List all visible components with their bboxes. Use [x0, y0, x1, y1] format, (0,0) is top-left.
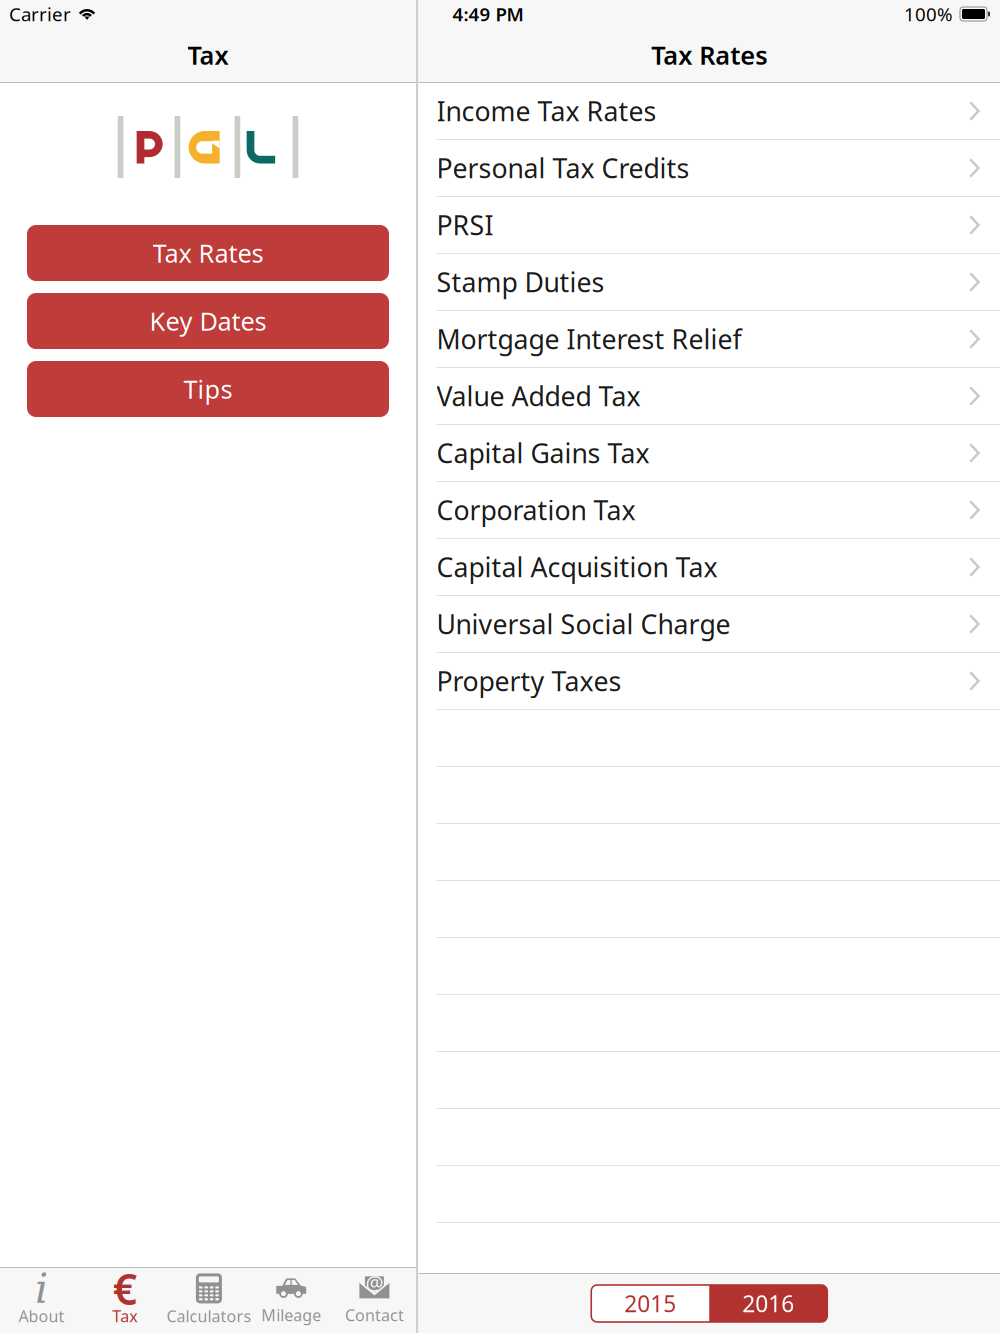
staticText: PRSI [436, 207, 493, 243]
button[interactable]: Value Added Tax [418, 368, 1000, 425]
staticText: 4:49 PM [452, 2, 523, 26]
staticText: Key Dates [149, 304, 266, 338]
staticText: About [19, 1305, 65, 1327]
staticText: 2016 [742, 1288, 794, 1318]
button[interactable]: Key Dates [27, 293, 389, 349]
staticText: Value Added Tax [436, 378, 640, 414]
staticText: Tax Rates [152, 236, 263, 270]
staticText: Tips [183, 372, 232, 406]
staticText: Carrier [9, 2, 71, 26]
staticText: Tax [187, 38, 228, 72]
button[interactable]: Universal Social Charge [418, 596, 1000, 653]
button[interactable]: Property Taxes [418, 653, 1000, 710]
button[interactable]: Income Tax Rates [418, 83, 1000, 140]
staticText: Calculators [166, 1305, 251, 1327]
staticText: Tax [112, 1305, 137, 1327]
button[interactable]: Mortgage Interest Relief [418, 311, 1000, 368]
staticText: Mileage [261, 1304, 321, 1326]
staticText: Capital Gains Tax [436, 435, 649, 471]
staticText: Stamp Duties [436, 264, 604, 300]
staticText: € [113, 1260, 137, 1317]
staticText: 2015 [624, 1288, 676, 1318]
button[interactable]: Personal Tax Credits [418, 140, 1000, 197]
button[interactable]: Capital Acquisition Tax [418, 539, 1000, 596]
button[interactable]: 2016 [709, 1285, 827, 1322]
button[interactable]: Capital Gains Tax [418, 425, 1000, 482]
button[interactable]: @ [333, 1268, 416, 1333]
staticText: Income Tax Rates [436, 93, 656, 129]
button[interactable]: PRSI [418, 197, 1000, 254]
staticText: i [35, 1264, 48, 1312]
staticText: Capital Acquisition Tax [436, 549, 717, 585]
staticText: Mortgage Interest Relief [436, 321, 741, 357]
staticText: Contact [345, 1304, 404, 1326]
staticText: Personal Tax Credits [436, 150, 689, 186]
button[interactable]: 2015 [591, 1285, 709, 1322]
staticText: Corporation Tax [436, 492, 635, 528]
staticText: Property Taxes [436, 663, 621, 699]
button[interactable]: i [0, 1268, 83, 1333]
button[interactable]: Calculators [166, 1268, 250, 1333]
button[interactable]: € [83, 1268, 166, 1333]
staticText: Universal Social Charge [436, 606, 730, 642]
staticText: Tax Rates [651, 38, 767, 72]
button[interactable]: Tax Rates [27, 225, 389, 281]
staticText: @ [365, 1269, 383, 1296]
button[interactable]: Corporation Tax [418, 482, 1000, 539]
button[interactable]: Mileage [250, 1268, 333, 1333]
staticText: 100% [904, 2, 953, 26]
button[interactable]: Stamp Duties [418, 254, 1000, 311]
button[interactable]: Tips [27, 361, 389, 417]
